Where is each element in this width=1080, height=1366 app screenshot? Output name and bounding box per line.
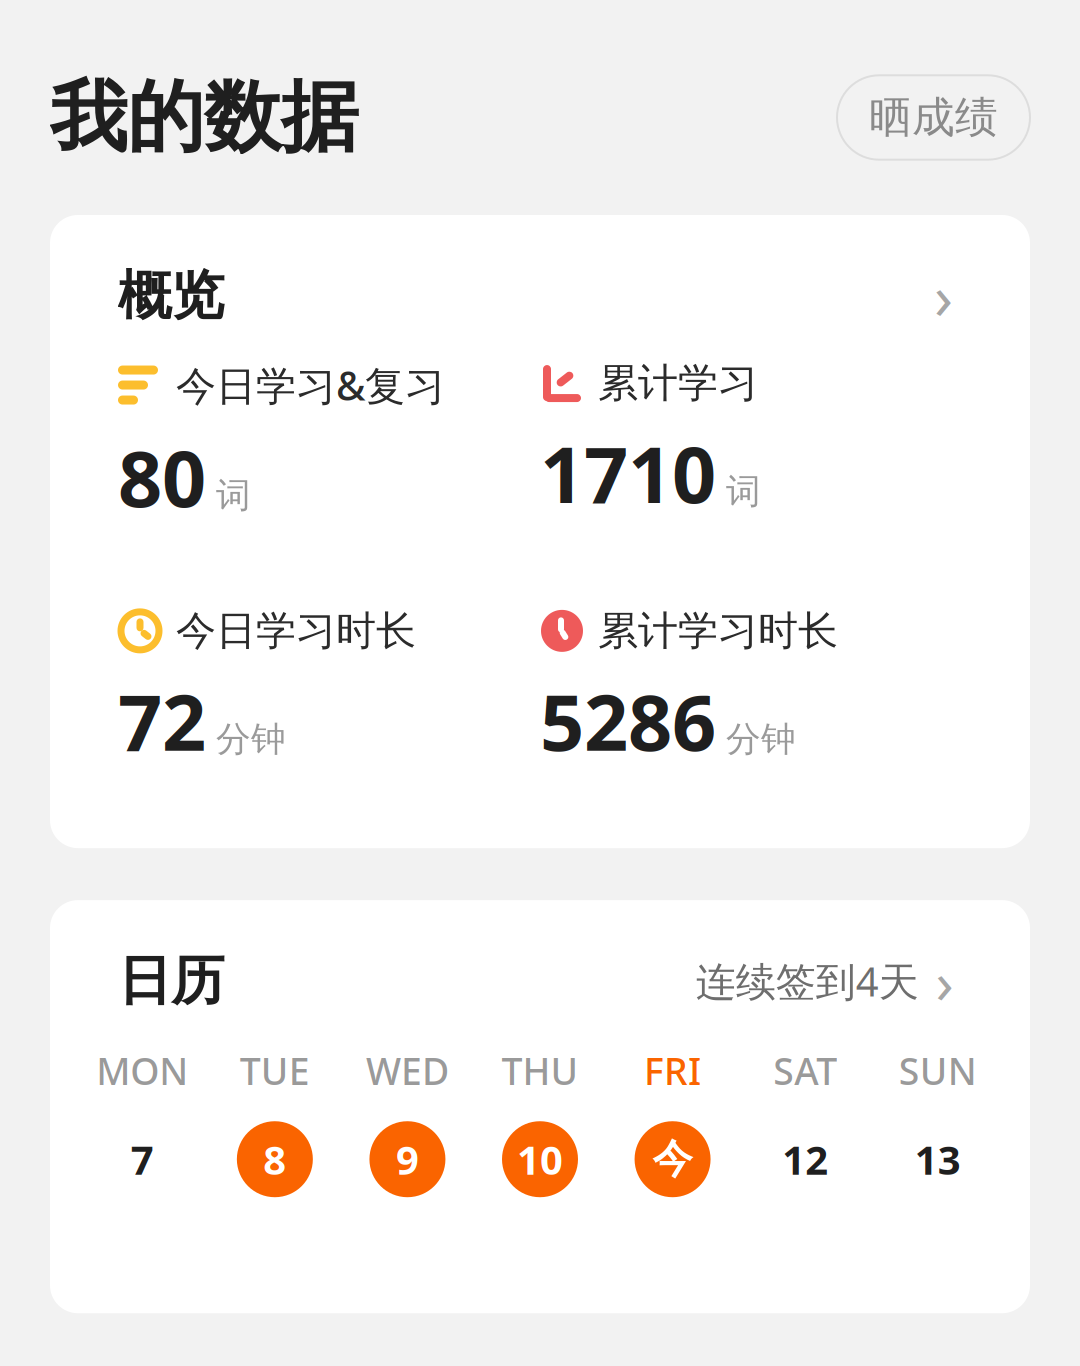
staticText: 7	[131, 1133, 154, 1186]
button[interactable]: 概览	[50, 215, 1030, 358]
button[interactable]: MON	[76, 1046, 209, 1197]
staticText: SAT	[773, 1046, 837, 1095]
staticText: 10	[517, 1133, 563, 1186]
staticText: 80	[118, 426, 206, 528]
button[interactable]: 晒成绩	[837, 75, 1030, 160]
button[interactable]: SUN	[871, 1046, 1004, 1197]
staticText: 13	[915, 1133, 961, 1186]
staticText: WED	[366, 1046, 449, 1095]
staticText: 今日学习时长	[176, 606, 416, 655]
staticText: 词	[216, 474, 251, 517]
staticText: 概览	[118, 263, 224, 328]
staticText: ›	[935, 942, 953, 1020]
staticText: 分钟	[216, 718, 286, 761]
staticText: 72	[118, 669, 206, 772]
staticText: 9	[396, 1133, 419, 1186]
button[interactable]: THU	[474, 1046, 606, 1197]
staticText: TUE	[240, 1046, 310, 1095]
staticText: 8	[263, 1133, 286, 1186]
staticText: 晒成绩	[869, 91, 998, 144]
button[interactable]: WED	[341, 1046, 474, 1197]
staticText: 5286	[540, 669, 716, 772]
staticText: 我的数据	[50, 70, 358, 165]
staticText: 分钟	[726, 718, 796, 761]
staticText: 12	[782, 1133, 828, 1186]
staticText: ›	[934, 255, 953, 336]
button[interactable]: 日历	[50, 900, 1030, 1046]
staticText: 今	[653, 1135, 693, 1184]
staticText: 累计学习	[598, 358, 758, 408]
staticText: 累计学习时长	[598, 606, 838, 655]
staticText: 词	[726, 470, 761, 513]
staticText: 连续签到4天	[696, 954, 919, 1007]
button[interactable]: FRI	[606, 1046, 739, 1197]
staticText: SUN	[899, 1046, 977, 1095]
staticText: 日历	[118, 948, 224, 1014]
staticText: THU	[501, 1046, 578, 1095]
button[interactable]: TUE	[209, 1046, 341, 1197]
button[interactable]: SAT	[739, 1046, 871, 1197]
staticText: FRI	[644, 1046, 701, 1095]
staticText: 今日学习&复习	[176, 358, 445, 412]
staticText: MON	[96, 1046, 188, 1095]
staticText: 1710	[540, 422, 716, 524]
